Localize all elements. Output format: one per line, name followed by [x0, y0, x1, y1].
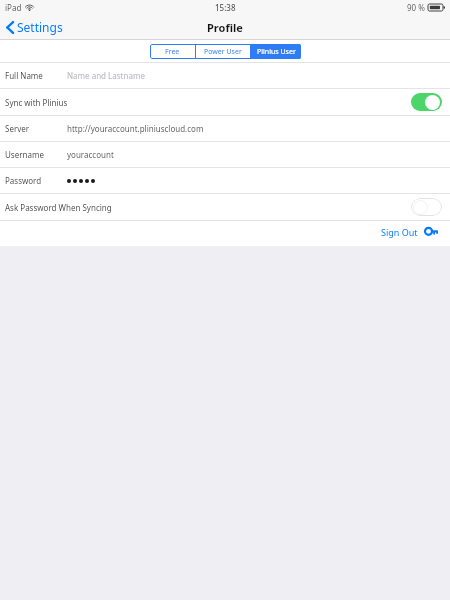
button[interactable]: Ask Password When Syncing — [0, 194, 450, 220]
staticText: youraccount — [67, 149, 114, 160]
button[interactable]: Password — [0, 168, 450, 193]
staticText: Server — [5, 123, 30, 134]
staticText: iPad — [5, 2, 22, 13]
button[interactable]: Sign Out — [375, 223, 444, 241]
button[interactable]: Toggle on — [411, 93, 442, 111]
button[interactable]: Server — [0, 116, 450, 141]
staticText: Profile — [207, 20, 243, 35]
staticText: http://youraccount.pliniuscloud.com — [67, 123, 204, 134]
staticText: Username — [5, 149, 44, 160]
staticText: Plinius User — [257, 47, 296, 57]
button[interactable]: Settings — [0, 16, 71, 38]
staticText: Power User — [204, 47, 242, 57]
button[interactable]: Plinius User — [251, 44, 301, 59]
staticText: Free — [165, 47, 180, 57]
button[interactable]: Power User — [196, 44, 250, 59]
staticText: Sign Out — [381, 226, 418, 238]
button[interactable]: Full Name — [0, 63, 450, 88]
button[interactable]: Toggle off — [411, 198, 442, 216]
staticText: 90 % — [407, 2, 425, 13]
button[interactable]: Free — [150, 44, 195, 59]
other: Key — [425, 228, 438, 236]
staticText: Ask Password When Syncing — [5, 202, 112, 213]
staticText: Settings — [17, 19, 63, 35]
staticText: Password — [5, 175, 42, 186]
staticText: Full Name — [5, 70, 43, 81]
staticText: Sync with Plinius — [5, 97, 68, 108]
staticText: 15:38 — [215, 2, 236, 13]
button[interactable]: Sync with Plinius — [0, 89, 450, 115]
button[interactable]: Username — [0, 142, 450, 167]
staticText: Name and Lastname — [67, 70, 145, 81]
